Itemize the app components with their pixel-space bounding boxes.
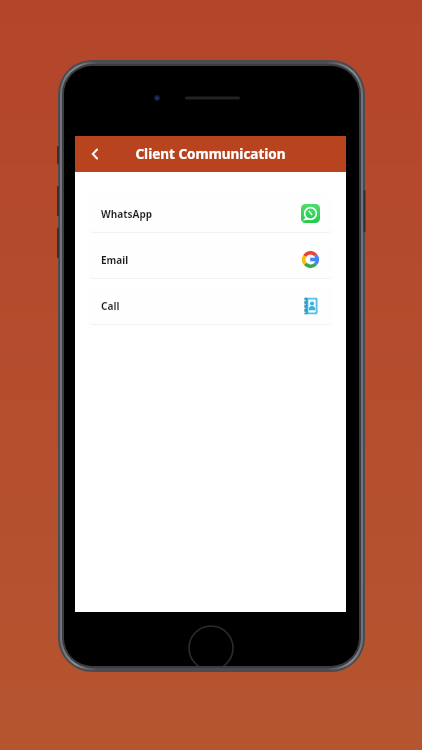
staticText: Email <box>101 253 129 267</box>
staticText: WhatsApp <box>101 207 153 221</box>
button[interactable]: Email <box>89 241 332 278</box>
button[interactable]: Call <box>89 287 332 324</box>
staticText: Client Communication <box>135 145 286 163</box>
button[interactable]: WhatsApp <box>89 195 332 232</box>
staticText: Call <box>101 299 120 313</box>
button[interactable]: Back <box>75 136 115 172</box>
